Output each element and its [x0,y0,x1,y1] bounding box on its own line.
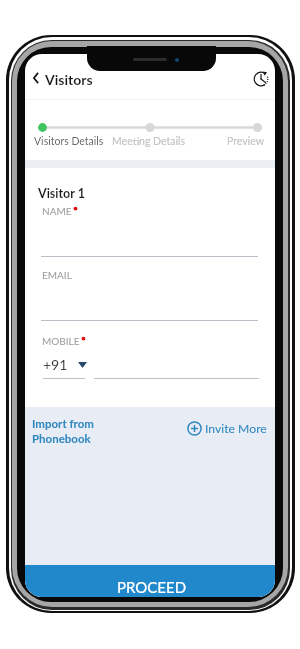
staticText: Visitor 1 [38,186,85,201]
staticText: Meeting Details [112,135,186,148]
button[interactable]: PROCEED [25,565,275,597]
staticText: Import from Phonebook [32,417,94,445]
staticText: EMAIL [42,269,72,281]
staticText: +91 [43,356,68,373]
staticText: MOBILE [42,335,80,347]
button[interactable]: History [244,62,275,96]
staticText: Visitors [45,71,93,88]
button[interactable]: Back [25,58,47,96]
staticText: Visitors Details [34,135,104,148]
staticText: NAME [42,205,72,217]
staticText: Invite More [205,421,267,436]
staticText: Preview [227,135,264,148]
button[interactable]: Import from Phonebook [32,417,94,445]
button[interactable]: Invite More [187,421,267,436]
staticText: PROCEED [117,578,187,596]
